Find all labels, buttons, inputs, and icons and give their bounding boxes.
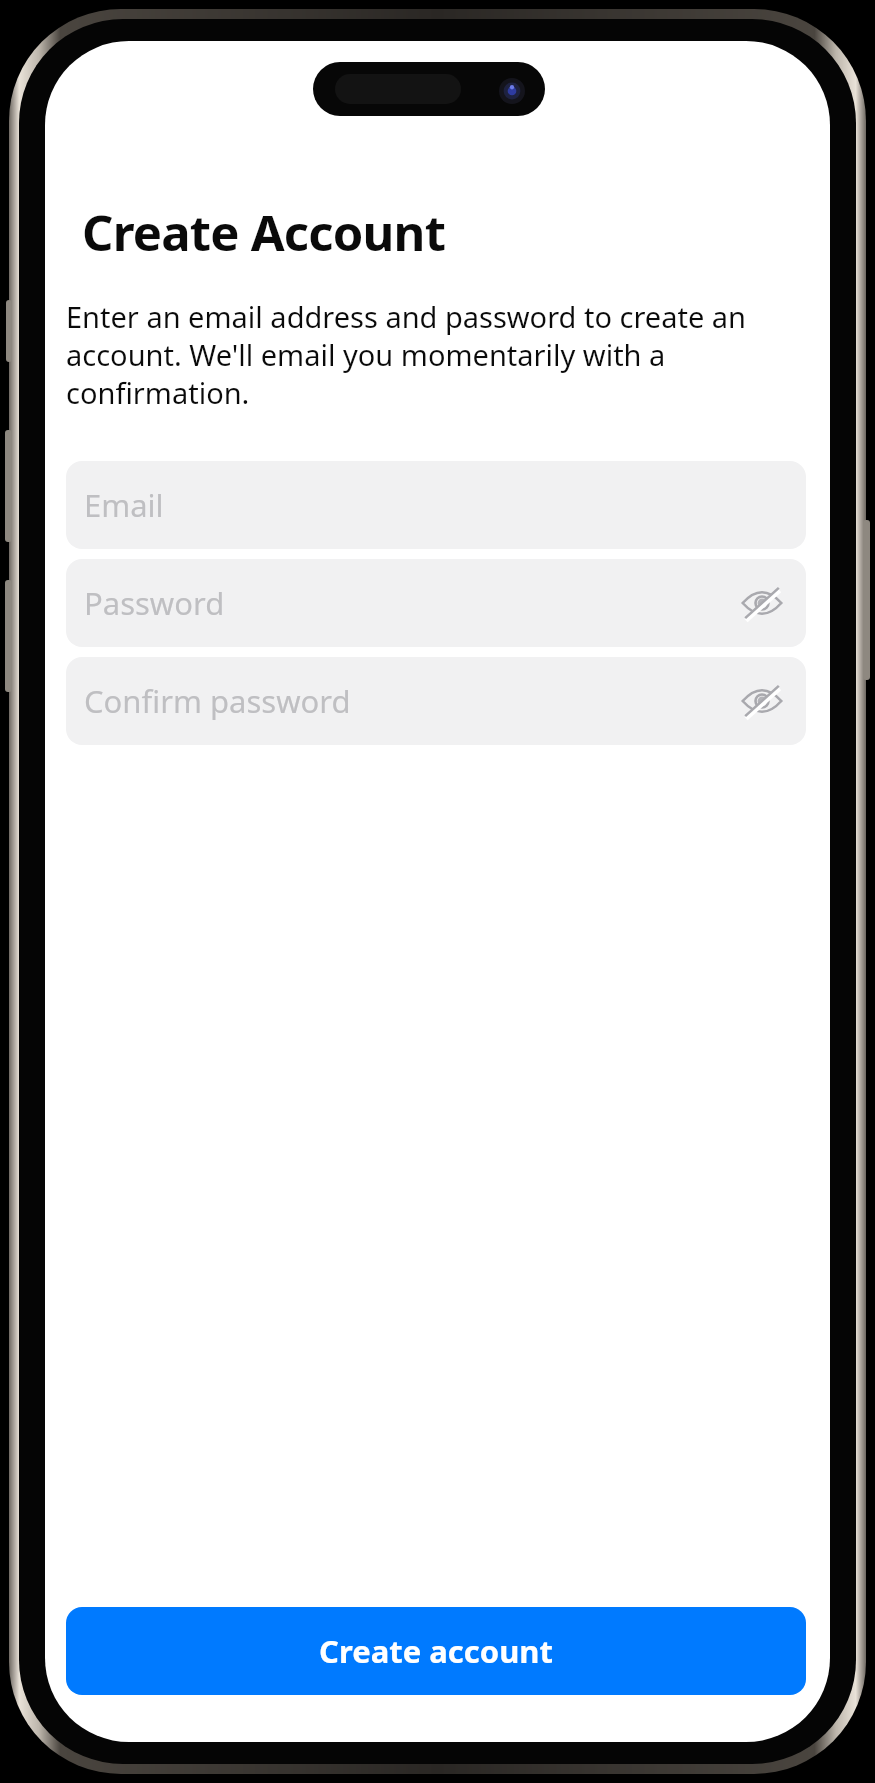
staticText: Password: [84, 582, 225, 624]
staticText: Email: [84, 484, 164, 526]
button[interactable]: Confirm password: [66, 657, 806, 745]
button[interactable]: Password: [66, 559, 806, 647]
button[interactable]: Create account: [66, 1607, 806, 1695]
button[interactable]: Show password: [736, 675, 788, 727]
staticText: Create Account: [82, 199, 446, 266]
button[interactable]: Email: [66, 461, 806, 549]
staticText: Confirm password: [84, 680, 351, 722]
button[interactable]: Show password: [736, 577, 788, 629]
staticText: Create account: [319, 1630, 553, 1672]
staticText: Enter an email address and password to c…: [66, 297, 806, 412]
